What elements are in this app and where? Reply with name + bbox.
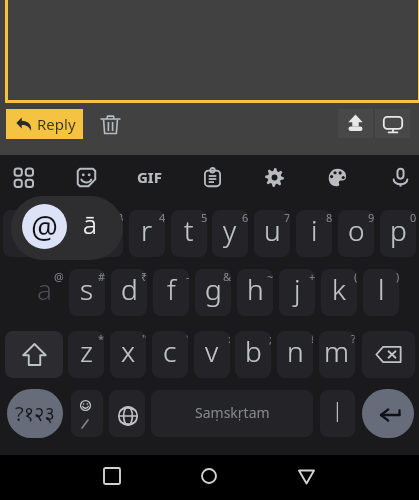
button[interactable]: c — [152, 331, 188, 378]
staticText: ' — [186, 331, 188, 346]
button[interactable]: l — [363, 269, 399, 316]
staticText: v — [205, 332, 219, 370]
button[interactable]: i — [296, 210, 332, 257]
staticText: n — [287, 332, 304, 370]
staticText: @ — [54, 269, 63, 284]
button[interactable]: Message text field — [5, 0, 419, 103]
button[interactable]: Shift — [5, 331, 63, 378]
button[interactable]: ?१२३ — [7, 389, 63, 438]
staticText: b — [245, 332, 262, 370]
button[interactable]: Theme — [315, 155, 359, 199]
staticText: Saṃskṛtam — [195, 403, 270, 422]
staticText: 9 — [368, 210, 374, 225]
button[interactable]: Apps — [1, 155, 45, 199]
button[interactable]: w — [45, 210, 81, 257]
button[interactable]: GIF — [127, 155, 171, 199]
button[interactable]: Backspace — [362, 331, 415, 378]
staticText: k — [332, 270, 346, 308]
staticText: d — [121, 270, 138, 308]
staticText: 8 — [326, 210, 332, 225]
staticText: a — [37, 270, 53, 308]
staticText: z — [80, 332, 93, 370]
staticText: + — [309, 269, 315, 284]
button[interactable]: e — [87, 210, 123, 257]
button[interactable]: f — [153, 269, 189, 316]
button[interactable]: Recents — [96, 460, 128, 492]
button[interactable]: d — [111, 269, 147, 316]
staticText: q — [13, 211, 30, 249]
button[interactable]: Enter — [362, 389, 414, 438]
button[interactable]: o — [338, 210, 374, 257]
button[interactable]: @ — [11, 196, 123, 260]
button[interactable]: Clipboard — [190, 155, 234, 199]
button[interactable]: Saṃskṛtam — [151, 390, 313, 437]
staticText: 1 — [33, 210, 39, 225]
button[interactable]: v — [194, 331, 230, 378]
button[interactable]: s — [69, 269, 105, 316]
button[interactable]: Back — [290, 460, 322, 492]
button[interactable]: y — [212, 210, 248, 257]
button[interactable]: m — [319, 331, 355, 378]
staticText: 6 — [242, 210, 248, 225]
button[interactable]: g — [195, 269, 231, 316]
staticText: Reply — [37, 114, 76, 134]
staticText: x — [121, 332, 136, 370]
button[interactable]: k — [321, 269, 357, 316]
staticText: " — [142, 331, 146, 346]
staticText: c — [163, 332, 177, 370]
staticText: ; — [269, 331, 271, 346]
button[interactable]: a — [27, 269, 63, 316]
button[interactable]: Show on display — [375, 109, 410, 138]
staticText: p — [390, 211, 407, 249]
button[interactable]: Voice input — [378, 155, 419, 199]
button[interactable]: Stickers — [64, 155, 108, 199]
staticText: t — [184, 211, 194, 249]
button[interactable]: Upload — [338, 109, 373, 138]
staticText: w — [53, 211, 74, 249]
staticText: 4 — [159, 210, 165, 225]
button[interactable]: u — [254, 210, 290, 257]
staticText: m — [324, 332, 350, 370]
staticText: g — [205, 270, 222, 308]
button[interactable]: r — [129, 210, 165, 257]
staticText: GIF — [137, 167, 162, 187]
staticText: 7 — [284, 210, 290, 225]
staticText: u — [264, 211, 281, 249]
button[interactable]: j — [279, 269, 315, 316]
button[interactable]: Delete — [93, 107, 127, 141]
staticText: ! — [311, 331, 313, 346]
staticText: - — [186, 269, 189, 284]
staticText: ?१२३ — [15, 400, 55, 427]
staticText: s — [80, 270, 94, 308]
button[interactable]: Change language — [109, 390, 145, 437]
button[interactable]: q — [3, 210, 39, 257]
staticText: ) — [396, 269, 399, 284]
staticText: | — [332, 396, 343, 423]
button[interactable]: n — [277, 331, 313, 378]
button[interactable]: Home — [193, 460, 225, 492]
button[interactable]: Emoji — [71, 390, 103, 437]
staticText: y — [223, 211, 237, 249]
staticText: f — [167, 270, 176, 308]
button[interactable]: t — [171, 210, 207, 257]
staticText: ? — [351, 331, 355, 346]
button[interactable]: h — [237, 269, 273, 316]
staticText: 0 — [410, 210, 416, 225]
button[interactable]: Reply — [6, 109, 83, 139]
button[interactable]: b — [235, 331, 271, 378]
staticText: ₹ — [141, 269, 147, 284]
staticText: ( — [354, 269, 357, 284]
staticText: @ — [31, 206, 58, 247]
button[interactable]: z — [68, 331, 104, 378]
staticText: h — [247, 270, 264, 308]
button[interactable]: Settings — [252, 155, 296, 199]
button[interactable]: | — [320, 390, 355, 437]
button[interactable]: x — [110, 331, 146, 378]
button[interactable]: p — [380, 210, 416, 257]
staticText: i — [311, 211, 318, 249]
staticText: ā — [83, 206, 97, 241]
staticText: j — [294, 270, 301, 308]
staticText: : — [228, 331, 230, 346]
